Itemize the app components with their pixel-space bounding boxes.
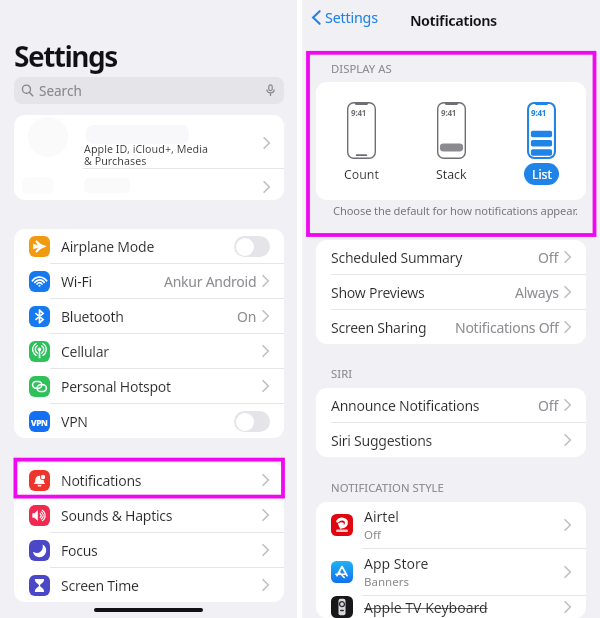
staticText: Notifications xyxy=(61,471,142,490)
button[interactable]: Show Previews xyxy=(316,275,586,309)
button[interactable]: Focus xyxy=(14,533,284,567)
button[interactable]: Airtel xyxy=(316,502,586,548)
button[interactable]: App Store xyxy=(316,549,586,595)
button[interactable]: VPN xyxy=(14,404,284,438)
staticText: Announce Notifications xyxy=(331,396,480,415)
button[interactable]: Announce Notifications xyxy=(316,388,586,422)
staticText: Siri Suggestions xyxy=(331,431,432,450)
staticText: Screen Sharing xyxy=(331,318,427,337)
staticText: DISPLAY AS xyxy=(331,61,392,76)
staticText: Bluetooth xyxy=(61,307,124,326)
staticText: Search xyxy=(39,82,82,100)
button[interactable]: Toggle VPN xyxy=(234,411,270,432)
staticText: Show Previews xyxy=(331,283,425,302)
button[interactable]: Settings xyxy=(308,5,384,30)
staticText: VPN xyxy=(61,412,88,431)
button[interactable]: Wi-Fi xyxy=(14,264,284,298)
button[interactable]: Apple ID settings xyxy=(14,168,284,200)
button[interactable]: Count xyxy=(339,95,383,185)
staticText: Notifications xyxy=(410,11,497,30)
button[interactable]: Bluetooth xyxy=(14,299,284,333)
button[interactable]: Screen Sharing xyxy=(316,310,586,344)
staticText: Personal Hotspot xyxy=(61,377,171,396)
staticText: 9:41 xyxy=(351,107,367,118)
button[interactable]: Apple TV Keyboard xyxy=(316,596,586,618)
button[interactable]: Stack xyxy=(429,95,473,185)
staticText: Wi-Fi xyxy=(61,272,92,291)
button[interactable]: Screen Time xyxy=(14,568,284,602)
button[interactable]: Scheduled Summary xyxy=(316,240,586,274)
staticText: VPN xyxy=(31,417,48,428)
staticText: Count xyxy=(344,166,379,183)
staticText: App Store xyxy=(364,554,429,573)
staticText: Scheduled Summary xyxy=(331,248,463,267)
staticText: Off xyxy=(364,527,381,543)
staticText: Focus xyxy=(61,541,98,560)
staticText: Apple TV Keyboard xyxy=(364,598,488,617)
staticText: Notifications Off xyxy=(455,318,559,337)
button[interactable]: Toggle Airplane Mode xyxy=(234,236,270,257)
staticText: 9:41 xyxy=(531,107,547,118)
button[interactable]: Cellular xyxy=(14,334,284,368)
staticText: 9:41 xyxy=(441,107,457,118)
staticText: Always xyxy=(515,283,559,302)
button[interactable]: Personal Hotspot xyxy=(14,369,284,403)
staticText: Banners xyxy=(364,574,409,590)
button[interactable]: Sounds & Haptics xyxy=(14,498,284,532)
staticText: Airtel xyxy=(364,507,399,526)
staticText: Settings xyxy=(325,8,378,27)
staticText: Settings xyxy=(14,37,117,75)
button[interactable]: Airplane Mode xyxy=(14,229,284,263)
button[interactable]: List xyxy=(519,95,563,185)
staticText: List xyxy=(532,166,552,183)
staticText: NOTIFICATION STYLE xyxy=(331,480,444,495)
button[interactable]: Notifications xyxy=(14,463,284,497)
button[interactable]: Family settings xyxy=(14,169,284,200)
staticText: Airplane Mode xyxy=(61,237,155,256)
staticText: Off xyxy=(538,248,559,267)
staticText: Cellular xyxy=(61,342,109,361)
button[interactable]: Siri Suggestions xyxy=(316,423,586,457)
staticText: Screen Time xyxy=(61,576,139,595)
staticText: On xyxy=(237,307,257,326)
staticText: Apple ID, iCloud+, Media & Purchases xyxy=(84,142,209,168)
staticText: SIRI xyxy=(331,366,353,381)
staticText: Off xyxy=(538,396,559,415)
staticText: Ankur Android xyxy=(164,272,257,291)
button[interactable]: Search xyxy=(14,77,284,104)
staticText: Stack xyxy=(436,166,467,183)
staticText: Sounds & Haptics xyxy=(61,506,173,525)
staticText: Choose the default for how notifications… xyxy=(333,203,578,218)
